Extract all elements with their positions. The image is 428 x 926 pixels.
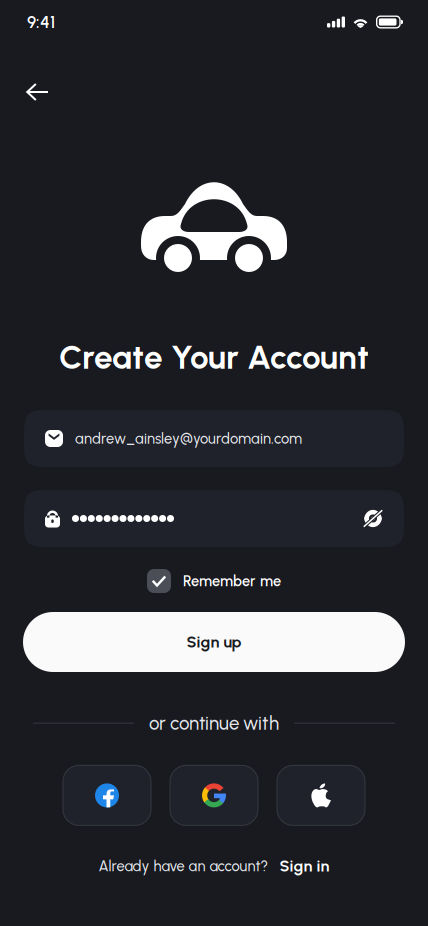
button[interactable]: Already have an account? xyxy=(98,856,329,876)
staticText: Sign in xyxy=(279,856,329,876)
button[interactable]: Continue with Google xyxy=(170,765,258,825)
button[interactable]: Show password xyxy=(359,504,387,532)
staticText: 9:41 xyxy=(27,12,55,32)
staticText: or continue with xyxy=(149,712,279,734)
button[interactable]: Continue with Apple xyxy=(277,765,365,825)
staticText: Sign up xyxy=(186,632,241,652)
button[interactable]: Continue with Facebook xyxy=(63,765,151,825)
staticText: andrew_ainsley@yourdomain.com xyxy=(75,430,302,447)
button[interactable]: Sign up xyxy=(0,612,428,672)
staticText: Create Your Account xyxy=(59,337,369,377)
staticText: Already have an account? xyxy=(98,857,268,875)
staticText: Remember me xyxy=(183,572,281,590)
button[interactable]: Back xyxy=(11,68,64,116)
button[interactable]: Remember me xyxy=(147,569,281,593)
